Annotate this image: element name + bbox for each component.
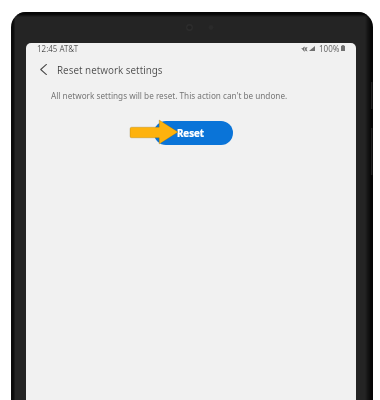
- staticText: 12:45 AT&T: [37, 43, 79, 54]
- staticText: 100%: [319, 43, 340, 54]
- staticText: All network settings will be reset. This…: [51, 90, 288, 101]
- button[interactable]: Reset: [154, 121, 233, 145]
- button[interactable]: Back: [31, 57, 55, 81]
- staticText: Reset: [177, 127, 204, 140]
- staticText: Reset network settings: [57, 63, 163, 76]
